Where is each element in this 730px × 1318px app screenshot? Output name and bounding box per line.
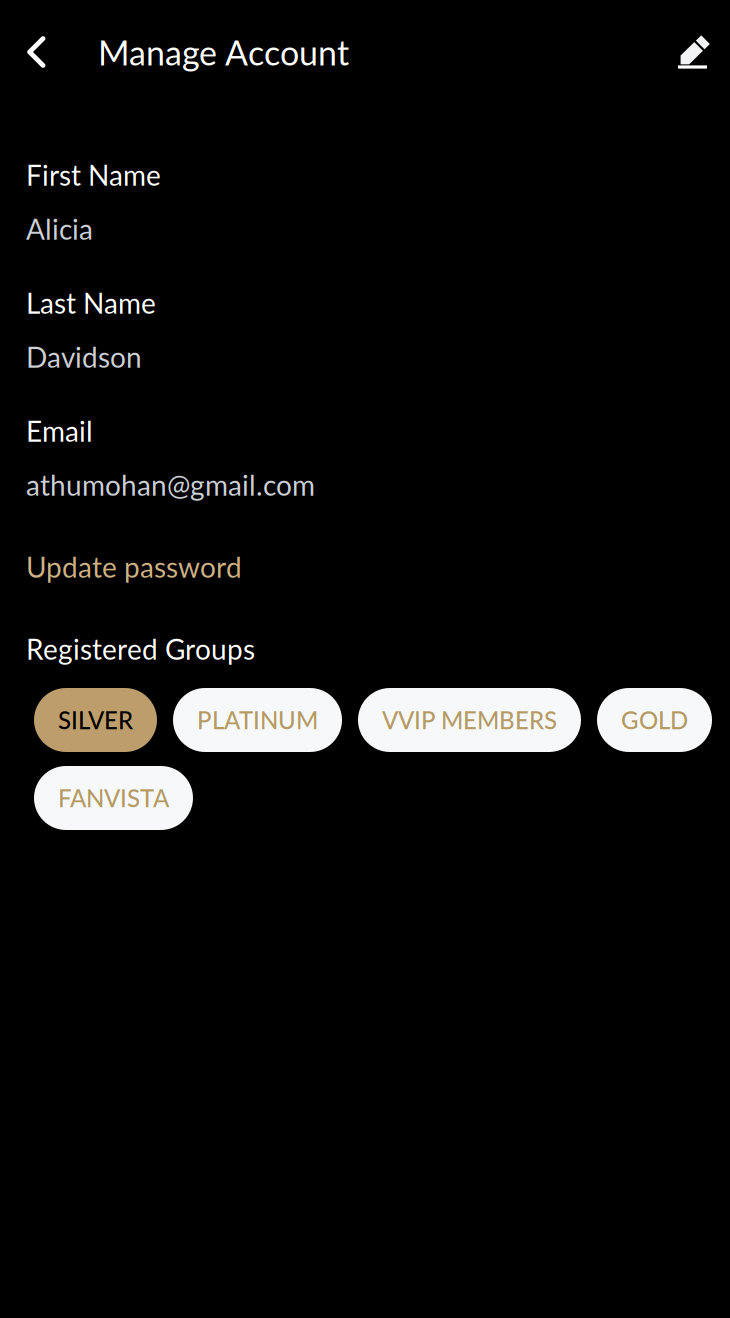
button[interactable]: FANVISTA bbox=[34, 766, 193, 830]
staticText: PLATINUM bbox=[197, 706, 318, 734]
staticText: Registered Groups bbox=[26, 632, 255, 666]
staticText: Update password bbox=[26, 550, 242, 584]
staticText: Email bbox=[26, 414, 93, 448]
button[interactable]: Edit profile bbox=[654, 0, 730, 95]
staticText: FANVISTA bbox=[58, 784, 169, 812]
staticText: Last Name bbox=[26, 286, 156, 320]
staticText: VVIP MEMBERS bbox=[382, 706, 557, 734]
button[interactable]: SILVER bbox=[34, 688, 157, 752]
staticText: SILVER bbox=[58, 706, 133, 734]
staticText: athumohan@gmail.com bbox=[26, 468, 315, 502]
staticText: GOLD bbox=[621, 706, 688, 734]
staticText: Alicia bbox=[26, 212, 93, 246]
button[interactable]: Update password bbox=[26, 552, 242, 582]
button[interactable]: VVIP MEMBERS bbox=[358, 688, 581, 752]
staticText: Davidson bbox=[26, 340, 142, 374]
staticText: First Name bbox=[26, 158, 161, 192]
button[interactable]: PLATINUM bbox=[173, 688, 342, 752]
button[interactable]: Back bbox=[0, 0, 69, 96]
staticText: Manage Account bbox=[98, 32, 349, 73]
button[interactable]: GOLD bbox=[597, 688, 712, 752]
